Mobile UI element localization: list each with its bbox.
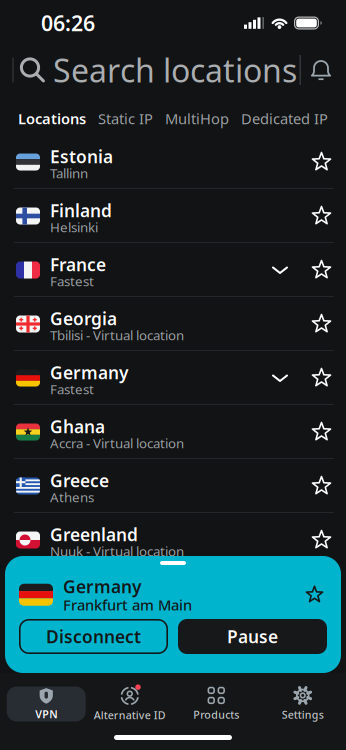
staticText: Accra - Virtual location [50, 434, 184, 452]
staticText: Helsinki [50, 218, 98, 236]
button[interactable]: Pause [178, 619, 327, 654]
button[interactable]: Products [173, 680, 259, 728]
button[interactable]: Dedicated IP [241, 109, 328, 128]
staticText: Tbilisi - Virtual location [50, 326, 184, 344]
button[interactable]: France [0, 243, 346, 297]
button[interactable]: Static IP [98, 109, 153, 128]
button[interactable]: Settings [259, 680, 346, 728]
staticText: Alternative ID [94, 708, 166, 722]
button[interactable]: Finland [0, 189, 346, 243]
button[interactable]: Germany [0, 351, 346, 405]
staticText: Germany [50, 361, 128, 384]
button[interactable]: Search locations [13, 49, 297, 91]
staticText: Tallinn [50, 164, 88, 182]
staticText: Ghana [50, 415, 105, 438]
staticText: Germany [63, 575, 141, 598]
staticText: 06:26 [41, 9, 95, 37]
button[interactable]: Add Greece to favorites [312, 476, 331, 495]
staticText: France [50, 253, 106, 276]
staticText: Dedicated IP [241, 109, 328, 128]
button[interactable]: Add Georgia to favorites [312, 314, 331, 333]
button[interactable]: Notifications [301, 57, 346, 83]
staticText: VPN [35, 707, 57, 721]
button[interactable]: Add Germany to favorites [312, 368, 331, 387]
staticText: Locations [18, 109, 86, 128]
button[interactable]: Disconnect [19, 619, 168, 654]
button[interactable]: Alternative ID [86, 680, 173, 728]
staticText: Fastest [50, 272, 94, 290]
staticText: Settings [282, 707, 324, 722]
button[interactable]: Greece [0, 459, 346, 513]
staticText: Products [193, 707, 239, 722]
button[interactable]: Ghana [0, 405, 346, 459]
button[interactable]: Greenland [0, 513, 346, 567]
staticText: Estonia [50, 145, 113, 168]
staticText: Search locations [53, 49, 297, 91]
button[interactable]: Estonia [0, 135, 346, 189]
button[interactable]: Remove Germany from favorites [306, 586, 323, 603]
staticText: MultiHop [165, 109, 229, 128]
staticText: Georgia [50, 307, 117, 330]
staticText: Static IP [98, 109, 153, 128]
staticText: Greenland [50, 523, 138, 546]
button[interactable]: Add Greenland to favorites [312, 530, 331, 549]
button[interactable]: MultiHop [165, 109, 229, 128]
staticText: Fastest [50, 380, 94, 398]
button[interactable]: Add Finland to favorites [312, 206, 331, 225]
staticText: Greece [50, 469, 109, 492]
staticText: Nuuk - Virtual location [50, 542, 184, 560]
staticText: Disconnect [46, 625, 141, 648]
staticText: Finland [50, 199, 112, 222]
button[interactable]: Add Ghana to favorites [312, 422, 331, 441]
button[interactable]: Add France to favorites [312, 260, 331, 279]
staticText: Pause [227, 625, 278, 648]
staticText: Frankfurt am Main [63, 595, 192, 614]
staticText: Athens [50, 488, 94, 506]
button[interactable]: VPN [0, 680, 86, 728]
button[interactable]: Add Estonia to favorites [312, 152, 331, 171]
button[interactable]: Georgia [0, 297, 346, 351]
button[interactable]: Locations [18, 109, 86, 128]
